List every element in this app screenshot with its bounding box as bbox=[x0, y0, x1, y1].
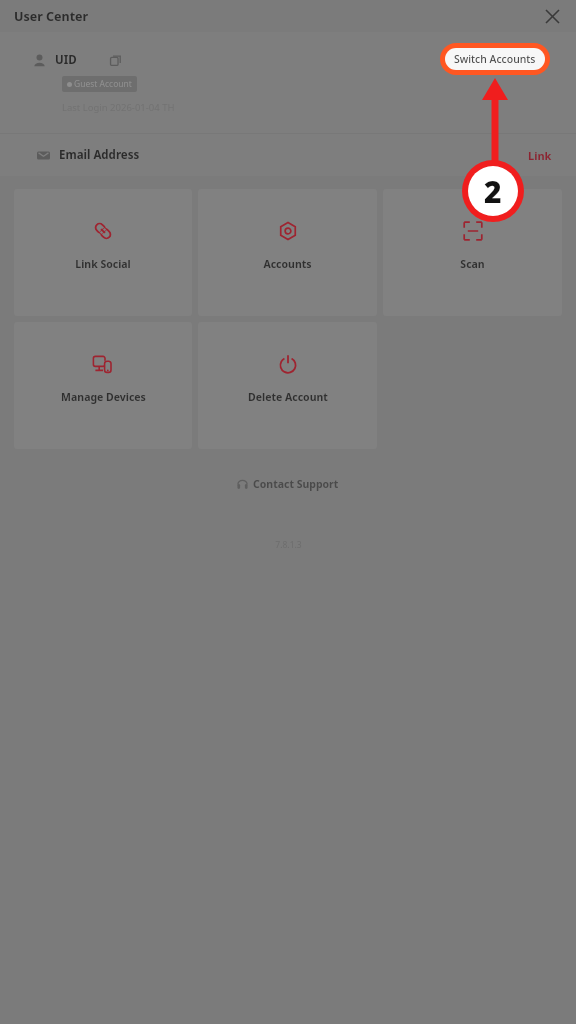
button[interactable]: Accounts bbox=[198, 189, 377, 316]
staticText: Contact Support bbox=[253, 477, 339, 491]
staticText: UID bbox=[55, 52, 77, 68]
staticText: Link bbox=[528, 148, 552, 163]
button[interactable]: Link bbox=[528, 148, 552, 163]
button[interactable]: Contact Support bbox=[229, 473, 347, 495]
staticText: Delete Account bbox=[248, 390, 328, 404]
staticText: Accounts bbox=[263, 257, 312, 271]
button[interactable]: Delete Account bbox=[198, 322, 377, 449]
button[interactable]: Email Address bbox=[0, 134, 576, 176]
button[interactable]: Link Social bbox=[14, 189, 192, 316]
staticText: Email Address bbox=[59, 147, 140, 163]
staticText: 2 bbox=[484, 171, 502, 212]
button[interactable]: Close bbox=[536, 0, 568, 32]
staticText: Switch Accounts bbox=[454, 52, 536, 66]
button[interactable]: Switch Accounts bbox=[445, 48, 545, 70]
staticText: Scan bbox=[460, 257, 485, 271]
staticText: Guest Account bbox=[74, 78, 132, 90]
staticText: Manage Devices bbox=[61, 390, 146, 404]
button[interactable]: Manage Devices bbox=[14, 322, 192, 449]
staticText: Link Social bbox=[75, 257, 131, 271]
button[interactable]: Scan bbox=[383, 189, 562, 316]
staticText: 7.8.1.3 bbox=[275, 539, 302, 551]
staticText: User Center bbox=[14, 8, 89, 25]
staticText: Last Login 2026-01-04 TH bbox=[62, 101, 175, 114]
button[interactable]: Copy UID bbox=[105, 50, 125, 70]
